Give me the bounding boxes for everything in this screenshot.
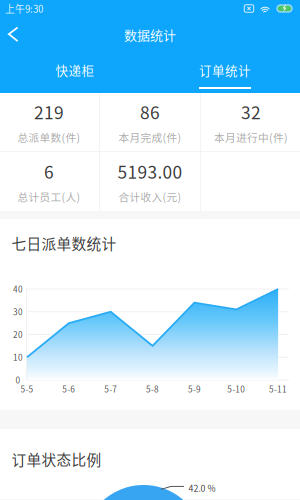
button[interactable]: 快递柜 [0, 52, 150, 93]
staticText: 总计员工(人) [17, 189, 80, 204]
staticText: 6 [44, 159, 54, 184]
staticText: 5-9 [188, 383, 201, 395]
staticText: 10 [13, 351, 23, 363]
staticText: 0 [15, 374, 20, 386]
staticText: 数据统计 [124, 25, 176, 44]
staticText: 5-6 [62, 383, 75, 395]
staticText: 合计收入(元) [118, 189, 181, 204]
staticText: 5-7 [104, 383, 117, 395]
staticText: 5-8 [146, 383, 159, 395]
staticText: 219 [34, 99, 64, 124]
staticText: 订单统计 [199, 61, 251, 79]
staticText: 5-11 [269, 383, 287, 395]
staticText: 本月进行中(件) [214, 129, 288, 145]
staticText: 40 [13, 283, 23, 295]
button[interactable]: 订单统计 [150, 52, 300, 93]
staticText: 86 [140, 99, 160, 124]
button[interactable]: Back [0, 17, 26, 52]
staticText: 订单状态比例 [11, 448, 101, 470]
staticText: 七日派单数统计 [11, 232, 116, 254]
staticText: 总派单数(件) [17, 129, 80, 145]
staticText: 42.0 % [188, 482, 215, 494]
staticText: 30 [13, 306, 23, 318]
staticText: 本月完成(件) [118, 129, 181, 145]
staticText: 上午9:30 [5, 1, 43, 16]
staticText: 5-10 [227, 383, 245, 395]
staticText: 32 [241, 99, 261, 124]
staticText: 5-5 [20, 383, 33, 395]
staticText: 20 [13, 328, 23, 340]
staticText: 5193.00 [117, 159, 182, 184]
staticText: 快递柜 [55, 61, 94, 79]
